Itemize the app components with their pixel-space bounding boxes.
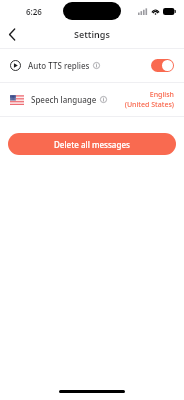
staticText: Auto TTS replies — [28, 60, 90, 71]
staticText: Settings — [74, 28, 110, 40]
button[interactable]: Auto TTS replies toggle — [151, 59, 174, 72]
button[interactable]: Speech language — [0, 83, 184, 116]
button[interactable]: Delete all messages — [8, 133, 176, 155]
staticText: (United States) — [124, 100, 174, 110]
staticText: Speech language — [31, 94, 97, 105]
staticText: English — [149, 90, 174, 100]
button[interactable]: Auto TTS replies — [0, 49, 184, 82]
staticText: Delete all messages — [54, 139, 130, 150]
button[interactable]: Back — [0, 22, 24, 46]
staticText: 6:26 — [26, 6, 42, 17]
